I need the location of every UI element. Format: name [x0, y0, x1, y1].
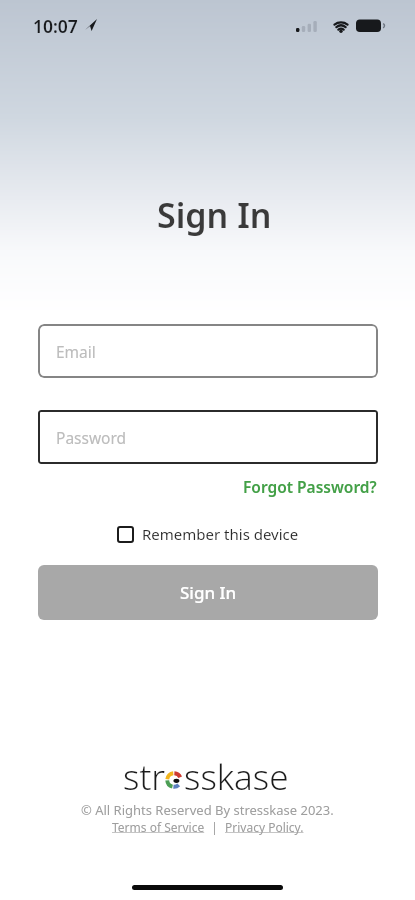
staticText: Email	[56, 341, 96, 362]
staticText: sskase	[184, 753, 289, 801]
staticText: Sign In	[180, 581, 237, 604]
staticText: © All Rights Reserved By stresskase 2023…	[81, 801, 334, 819]
button[interactable]: Terms of Service	[112, 819, 205, 835]
staticText: str	[123, 753, 166, 801]
staticText: |	[205, 819, 225, 835]
button[interactable]: Privacy Policy.	[225, 819, 304, 835]
staticText: 10:07	[33, 14, 78, 38]
button[interactable]: Remember this device	[117, 524, 299, 544]
staticText: Remember this device	[142, 524, 299, 544]
button[interactable]: Forgot Password?	[243, 476, 377, 497]
staticText: Forgot Password?	[243, 476, 377, 497]
staticText: Password	[56, 427, 127, 448]
button[interactable]: Email	[38, 324, 378, 378]
button[interactable]: Sign In	[38, 565, 378, 620]
staticText: Terms of Service	[112, 819, 205, 835]
staticText: Privacy Policy.	[225, 819, 304, 835]
button[interactable]: Password	[38, 410, 378, 464]
staticText: Sign In	[157, 192, 272, 238]
